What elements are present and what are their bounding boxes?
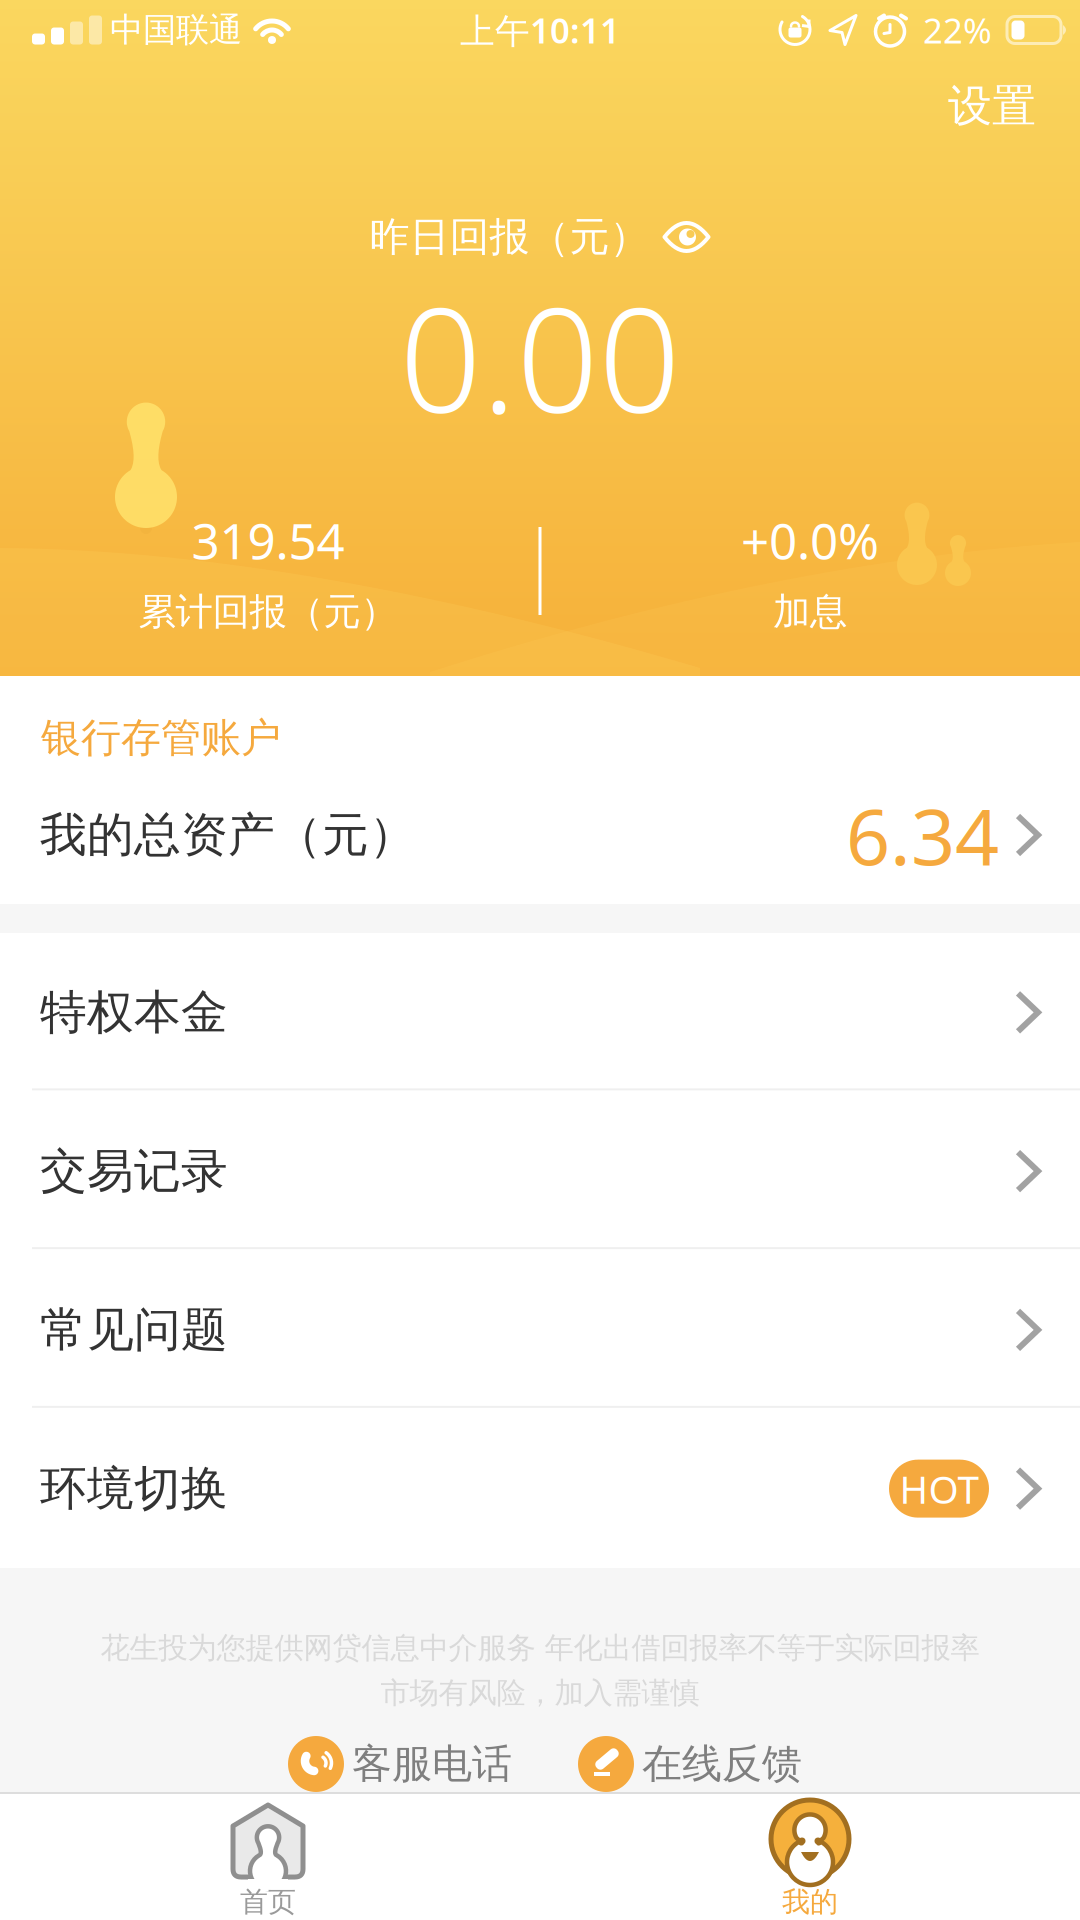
button[interactable]: 我的 xyxy=(540,1792,1080,1920)
button[interactable]: 设置 xyxy=(934,71,1050,141)
staticText: 常见问题 xyxy=(40,1301,228,1358)
staticText: 累计回报（元） xyxy=(138,589,397,635)
staticText: 0.00 xyxy=(399,261,680,453)
button[interactable]: 我的总资产（元） xyxy=(0,780,1080,890)
staticText: 设置 xyxy=(948,79,1036,133)
button[interactable]: 在线反馈 xyxy=(578,1736,802,1792)
staticText: 环境切换 xyxy=(40,1460,228,1517)
button[interactable]: 环境切换 xyxy=(0,1409,1080,1568)
staticText: 我的 xyxy=(782,1885,838,1919)
staticText: 上午10:11 xyxy=(460,7,620,53)
button[interactable]: 常见问题 xyxy=(0,1250,1080,1409)
staticText: 6.34 xyxy=(846,784,999,886)
staticText: 首页 xyxy=(240,1885,296,1919)
button[interactable]: 特权本金 xyxy=(0,933,1080,1092)
staticText: 我的总资产（元） xyxy=(40,806,416,864)
staticText: +0.0% xyxy=(741,507,879,573)
staticText: 昨日回报（元） xyxy=(369,212,649,261)
staticText: 交易记录 xyxy=(40,1142,228,1200)
button[interactable]: 客服电话 xyxy=(288,1736,512,1792)
staticText: 市场有风险，加入需谨慎 xyxy=(380,1675,699,1711)
staticText: 中国联通 xyxy=(110,9,242,50)
button[interactable]: 显示或隐藏昨日回报 xyxy=(369,212,710,261)
staticText: 加息 xyxy=(773,589,847,635)
staticText: 特权本金 xyxy=(40,984,228,1041)
staticText: 银行存管账户 xyxy=(41,713,281,763)
staticText: HOT xyxy=(899,1463,978,1514)
staticText: 花生投为您提供网贷信息中介服务 年化出借回报率不等于实际回报率 xyxy=(100,1630,979,1666)
staticText: 319.54 xyxy=(191,507,344,573)
button[interactable]: 首页 xyxy=(0,1792,540,1920)
staticText: 22% xyxy=(923,7,992,53)
button[interactable]: 交易记录 xyxy=(0,1092,1080,1251)
staticText: 在线反馈 xyxy=(642,1739,802,1788)
staticText: 客服电话 xyxy=(352,1739,512,1788)
